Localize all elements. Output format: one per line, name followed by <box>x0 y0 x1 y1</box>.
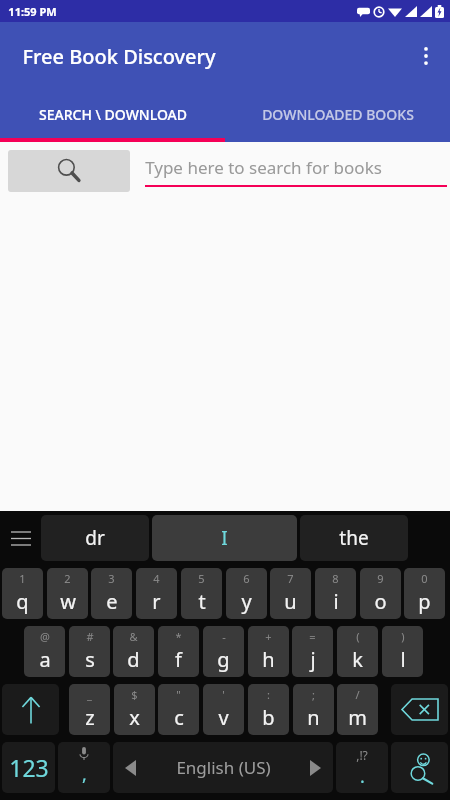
button[interactable]: 0 <box>404 568 445 619</box>
button[interactable]: 9 <box>360 568 401 619</box>
staticText: : <box>267 687 270 702</box>
button[interactable]: ; <box>293 684 334 735</box>
staticText: _ <box>87 687 92 702</box>
staticText: s <box>85 646 95 673</box>
staticText: 4 <box>153 571 160 586</box>
staticText: b <box>262 704 275 731</box>
button[interactable]: / <box>337 684 378 735</box>
staticText: k <box>352 646 363 673</box>
staticText: c <box>174 704 184 731</box>
staticText: i <box>333 588 339 615</box>
staticText: v <box>218 704 229 731</box>
staticText: I <box>221 525 228 551</box>
staticText: " <box>176 687 181 702</box>
staticText: p <box>418 588 431 615</box>
button[interactable]: dr <box>41 515 149 561</box>
button[interactable]: 5 <box>181 568 222 619</box>
button[interactable]: $ <box>114 684 155 735</box>
staticText: dr <box>85 525 105 551</box>
staticText: 7 <box>287 571 294 586</box>
button[interactable]: Keyboard menu <box>2 511 40 565</box>
staticText: h <box>262 646 275 673</box>
staticText: DOWNLOADED BOOKS <box>262 105 414 124</box>
button[interactable]: More options <box>402 32 450 80</box>
staticText: 11:59 PM <box>8 4 57 19</box>
staticText: x <box>129 704 140 731</box>
staticText: r <box>152 588 161 615</box>
button[interactable]: & <box>113 626 154 677</box>
button[interactable]: _ <box>69 684 110 735</box>
button[interactable]: ) <box>382 626 423 677</box>
button[interactable]: " <box>158 684 199 735</box>
staticText: o <box>374 588 387 615</box>
staticText: n <box>307 704 320 731</box>
staticText: / <box>355 687 360 702</box>
button[interactable]: Numbers <box>2 742 55 793</box>
staticText: f <box>175 646 182 673</box>
staticText: ; <box>312 687 315 702</box>
button[interactable]: Backspace <box>391 684 448 735</box>
staticText: a <box>39 646 51 673</box>
button[interactable]: Shift <box>2 684 59 735</box>
staticText: 3 <box>108 571 115 586</box>
staticText: = <box>309 629 316 644</box>
staticText: English (US) <box>176 756 271 779</box>
staticText: 1 <box>19 571 26 586</box>
button[interactable]: ' <box>203 684 244 735</box>
staticText: Free Book Discovery <box>22 43 216 70</box>
button[interactable]: = <box>292 626 333 677</box>
staticText: 5 <box>198 571 205 586</box>
staticText: ( <box>356 629 360 644</box>
staticText: Type here to search for books <box>145 156 382 179</box>
staticText: . <box>360 764 365 789</box>
staticText: * <box>175 629 182 644</box>
staticText: e <box>106 588 118 615</box>
staticText: g <box>217 646 230 673</box>
staticText: t <box>198 588 206 615</box>
staticText: w <box>60 588 76 615</box>
button[interactable]: the <box>300 515 408 561</box>
button[interactable]: 7 <box>270 568 311 619</box>
button[interactable]: 2 <box>47 568 88 619</box>
button[interactable]: Emoji search <box>391 742 448 793</box>
button[interactable]: 1 <box>2 568 43 619</box>
staticText: d <box>127 646 140 673</box>
button[interactable]: + <box>248 626 289 677</box>
staticText: + <box>265 629 272 644</box>
button[interactable]: ( <box>337 626 378 677</box>
staticText: @ <box>40 629 50 644</box>
staticText: 8 <box>332 571 339 586</box>
button[interactable]: I <box>152 515 297 561</box>
button[interactable]: * <box>158 626 199 677</box>
button[interactable]: Space <box>113 742 333 793</box>
button[interactable]: Period <box>336 742 388 793</box>
button[interactable]: DOWNLOADED BOOKS <box>225 90 450 138</box>
button[interactable]: : <box>248 684 289 735</box>
staticText: , <box>82 762 87 787</box>
button[interactable]: - <box>203 626 244 677</box>
staticText: the <box>339 525 369 551</box>
staticText: l <box>400 646 406 673</box>
button[interactable]: 6 <box>226 568 267 619</box>
staticText: 123 <box>9 752 49 783</box>
staticText: ,!? <box>356 747 368 763</box>
staticText: 9 <box>377 571 384 586</box>
staticText: ' <box>222 687 225 702</box>
button[interactable]: SEARCH \ DOWNLOAD <box>0 90 225 138</box>
button[interactable]: # <box>69 626 110 677</box>
staticText: q <box>16 588 29 615</box>
staticText: # <box>86 629 94 644</box>
button[interactable]: Type here to search for books <box>145 147 447 187</box>
staticText: ) <box>401 629 405 644</box>
staticText: z <box>85 704 95 731</box>
button[interactable]: Comma, voice input <box>58 742 110 793</box>
button[interactable]: Search <box>8 150 130 192</box>
staticText: SEARCH \ DOWNLOAD <box>39 105 187 124</box>
button[interactable]: 3 <box>91 568 132 619</box>
staticText: j <box>310 646 316 673</box>
staticText: 0 <box>421 571 428 586</box>
button[interactable]: @ <box>24 626 65 677</box>
staticText: 6 <box>243 571 250 586</box>
button[interactable]: 4 <box>136 568 177 619</box>
button[interactable]: 8 <box>315 568 356 619</box>
